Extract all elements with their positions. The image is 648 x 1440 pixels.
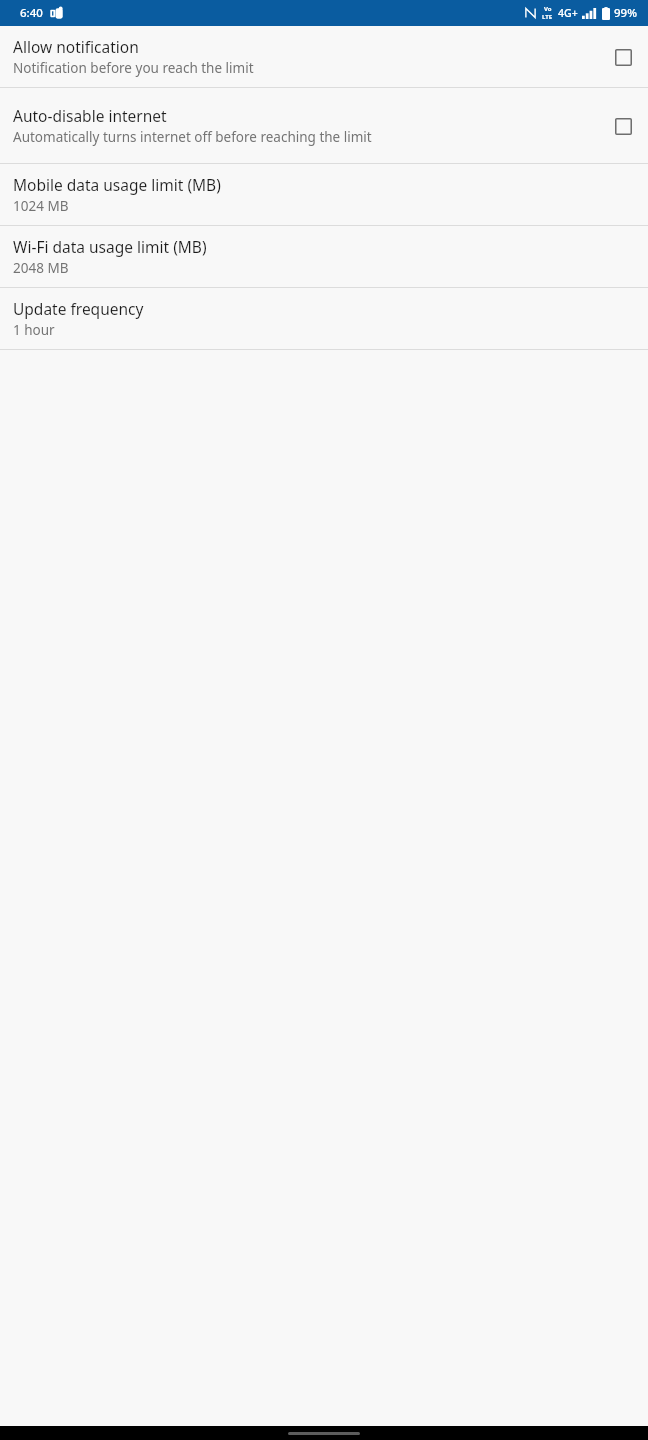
- staticText: 1024 MB: [13, 197, 69, 215]
- staticText: Auto-disable internet: [13, 105, 167, 126]
- button[interactable]: Allow notification: [0, 26, 648, 87]
- staticText: 6:40: [20, 5, 43, 21]
- staticText: Allow notification: [13, 36, 139, 57]
- staticText: 2048 MB: [13, 259, 69, 277]
- staticText: Vo: [544, 5, 552, 13]
- button[interactable]: Auto-disable internet: [0, 88, 648, 163]
- button[interactable]: Update frequency: [0, 288, 648, 349]
- staticText: LTE: [542, 13, 553, 21]
- button[interactable]: Toggle checkbox: [611, 114, 635, 138]
- button[interactable]: Home gesture bar: [288, 1432, 360, 1435]
- button[interactable]: Toggle checkbox: [611, 45, 635, 69]
- staticText: Wi-Fi data usage limit (MB): [13, 236, 207, 257]
- staticText: 1 hour: [13, 321, 55, 339]
- button[interactable]: Wi-Fi data usage limit (MB): [0, 226, 648, 287]
- staticText: 99%: [614, 5, 637, 21]
- staticText: Automatically turns internet off before …: [13, 128, 372, 146]
- staticText: Mobile data usage limit (MB): [13, 174, 221, 195]
- staticText: Notification before you reach the limit: [13, 59, 254, 77]
- staticText: Update frequency: [13, 298, 144, 319]
- button[interactable]: Mobile data usage limit (MB): [0, 164, 648, 225]
- staticText: 4G+: [558, 6, 578, 20]
